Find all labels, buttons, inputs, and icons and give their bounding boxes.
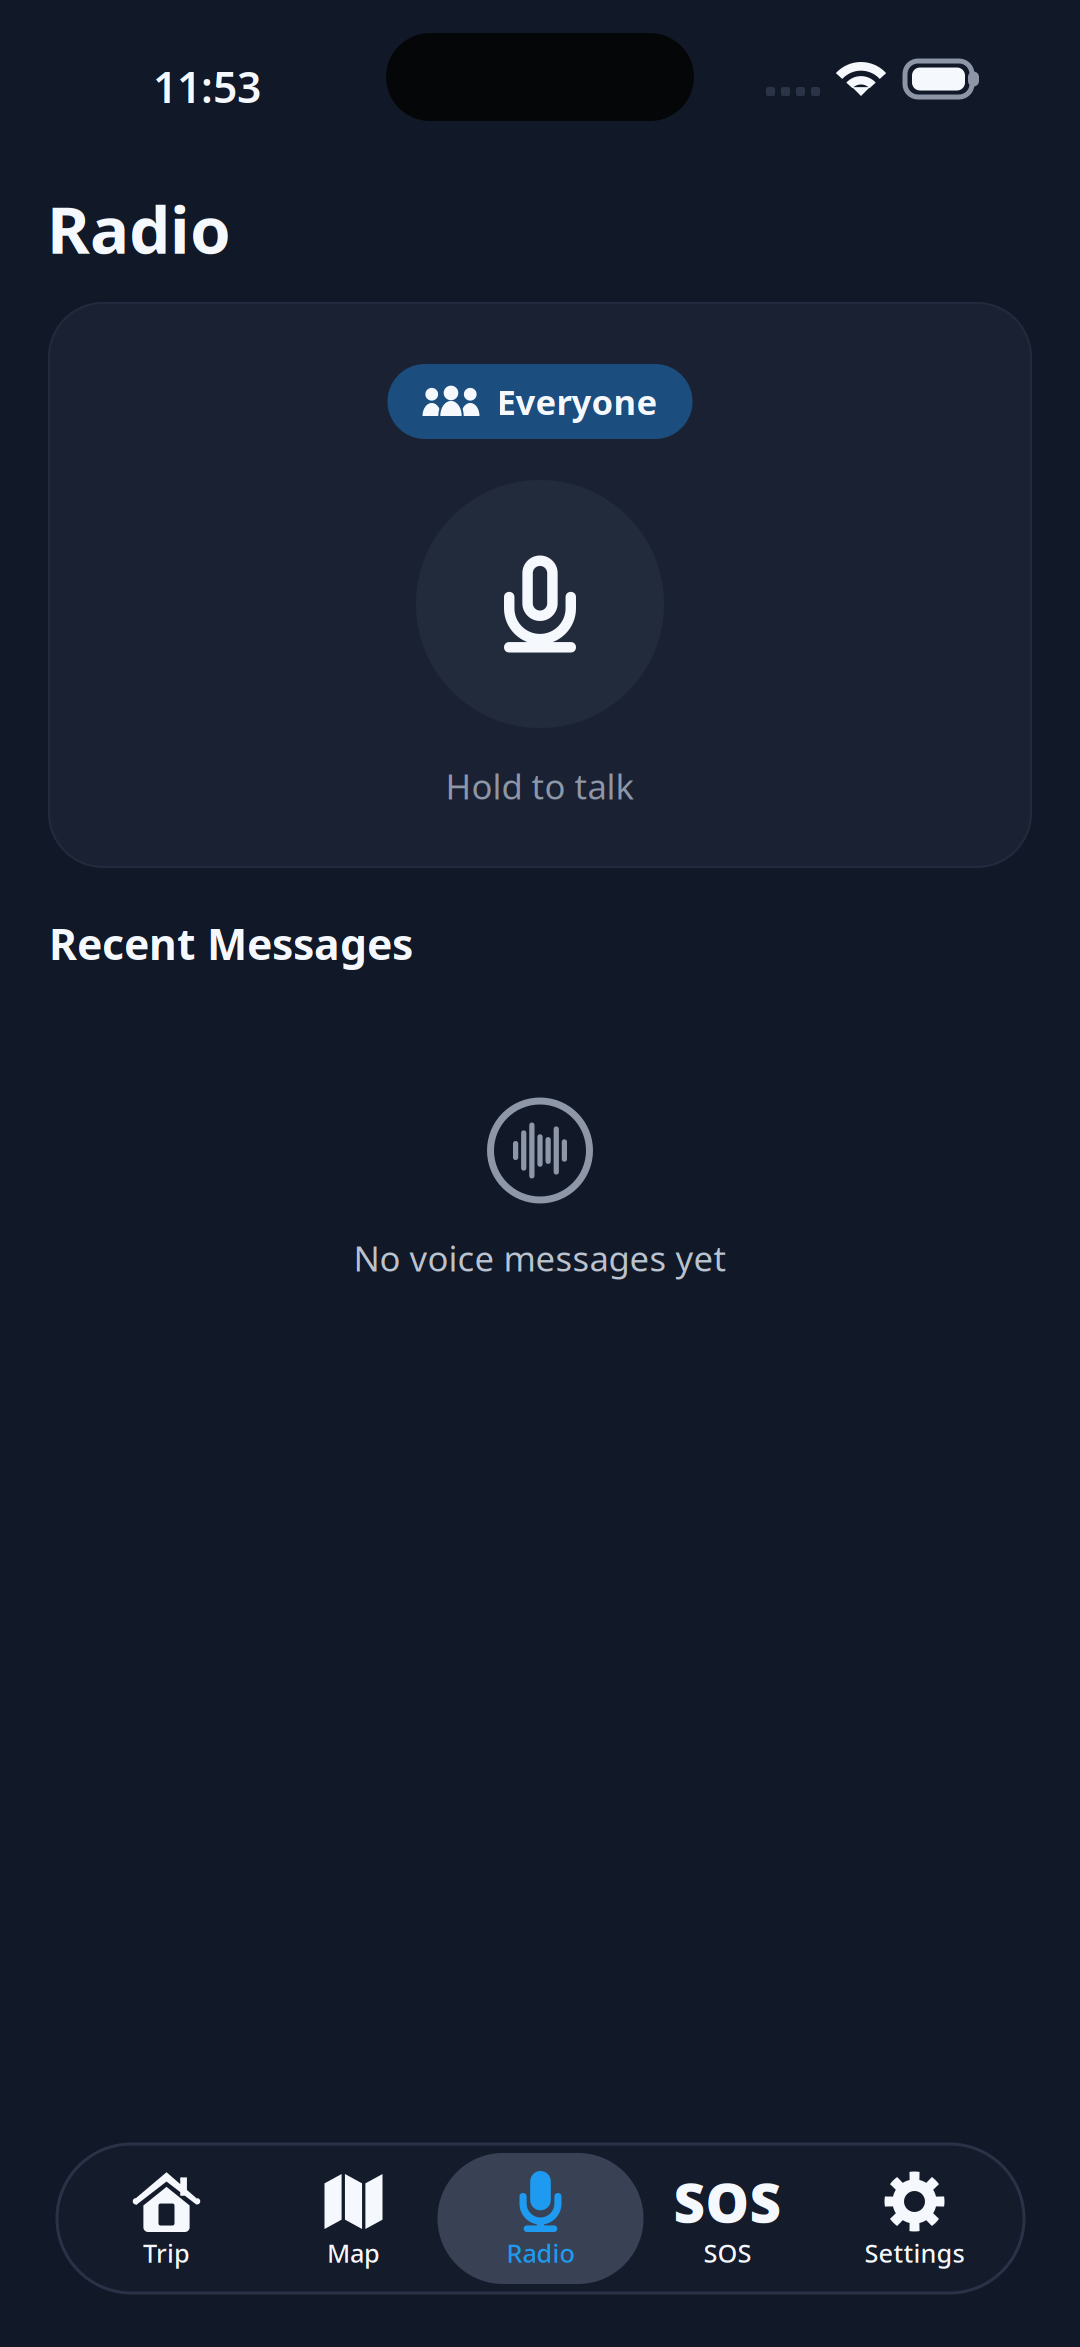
button[interactable]: Push to talk (416, 480, 664, 728)
staticText: 11:53 (153, 58, 261, 115)
staticText: No voice messages yet (353, 1235, 726, 1281)
button[interactable]: Radio (447, 2153, 634, 2284)
button[interactable]: Settings (821, 2153, 1008, 2284)
button[interactable]: Everyone (387, 364, 692, 439)
staticText: Map (327, 2236, 380, 2270)
staticText: Recent Messages (49, 915, 413, 972)
staticText: SOS (703, 2236, 751, 2270)
button[interactable]: Map (260, 2153, 447, 2284)
staticText: Radio (47, 185, 231, 272)
button[interactable]: Trip (73, 2153, 260, 2284)
staticText: SOS (673, 2165, 781, 2238)
staticText: Hold to talk (445, 763, 634, 809)
staticText: Settings (864, 2236, 964, 2270)
staticText: Radio (506, 2236, 574, 2270)
staticText: Trip (143, 2236, 190, 2270)
button[interactable]: SOS (634, 2153, 821, 2284)
staticText: Everyone (496, 378, 657, 424)
